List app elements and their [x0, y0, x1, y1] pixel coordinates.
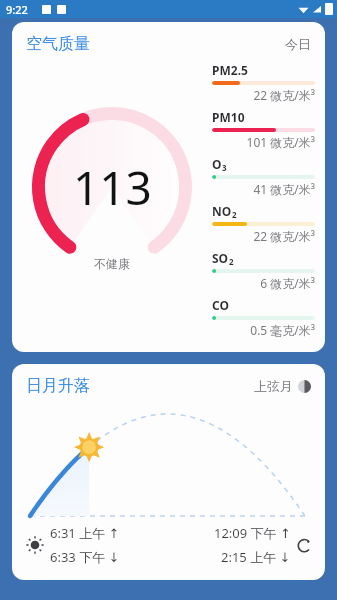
- staticText: 9:22: [6, 2, 28, 17]
- staticText: 22 微克/米³: [212, 87, 315, 103]
- staticText: 101 微克/米³: [212, 134, 315, 150]
- staticText: 6:33 下午 ↓: [50, 548, 120, 566]
- button[interactable]: 日月升落: [12, 364, 325, 580]
- staticText: 22 微克/米³: [212, 228, 315, 244]
- staticText: 41 微克/米³: [212, 181, 315, 197]
- staticText: 113: [73, 156, 152, 219]
- staticText: 2:15 上午 ↓: [221, 548, 291, 566]
- staticText: 日月升落: [26, 376, 90, 396]
- staticText: 上弦月: [254, 378, 293, 394]
- staticText: SO: [212, 250, 229, 266]
- staticText: 6:31 上午 ↑: [50, 524, 120, 542]
- other: Sunrise and sunset: [26, 536, 44, 554]
- staticText: NO: [212, 203, 232, 219]
- button[interactable]: 空气质量: [12, 22, 325, 352]
- staticText: 不健康: [94, 256, 130, 271]
- staticText: PM10: [212, 109, 245, 125]
- staticText: 2: [232, 209, 237, 220]
- staticText: 3: [222, 162, 227, 173]
- staticText: PM2.5: [212, 62, 248, 78]
- staticText: 0.5 毫克/米³: [212, 322, 315, 338]
- other: Moonrise and moonset: [297, 537, 313, 553]
- staticText: CO: [212, 297, 229, 313]
- staticText: 今日: [285, 36, 311, 52]
- staticText: 空气质量: [26, 34, 90, 54]
- staticText: 6 微克/米³: [212, 275, 315, 291]
- staticText: O: [212, 156, 222, 172]
- staticText: 2: [229, 256, 234, 267]
- staticText: 12:09 下午 ↑: [214, 524, 291, 542]
